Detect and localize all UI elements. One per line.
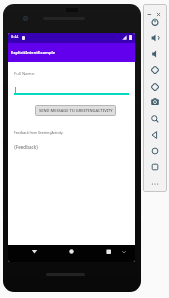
staticText: {Feedback}	[14, 144, 38, 150]
button[interactable]	[147, 12, 152, 17]
button[interactable]	[149, 178, 161, 190]
button[interactable]	[149, 81, 161, 93]
staticText: Feedback from GreetingActivity:	[14, 130, 64, 134]
staticText: 8:44	[11, 34, 19, 39]
button[interactable]	[149, 32, 161, 44]
button[interactable]	[149, 161, 161, 173]
button[interactable]	[68, 248, 75, 255]
staticText: SEND MESSAGE TO GREETINGACTIVITY	[39, 108, 113, 113]
button[interactable]	[149, 129, 161, 141]
button[interactable]	[31, 248, 38, 255]
button[interactable]	[149, 96, 161, 108]
staticText: Full Name:	[14, 71, 35, 77]
button[interactable]	[156, 12, 161, 17]
button[interactable]	[149, 64, 161, 76]
button[interactable]: SEND MESSAGE TO GREETINGACTIVITY	[35, 105, 116, 116]
staticText: ExplicitIntentExample	[11, 50, 56, 55]
button[interactable]	[149, 16, 161, 28]
button[interactable]	[149, 113, 161, 125]
button[interactable]	[105, 248, 112, 255]
button[interactable]	[149, 145, 161, 157]
button[interactable]	[149, 48, 161, 60]
